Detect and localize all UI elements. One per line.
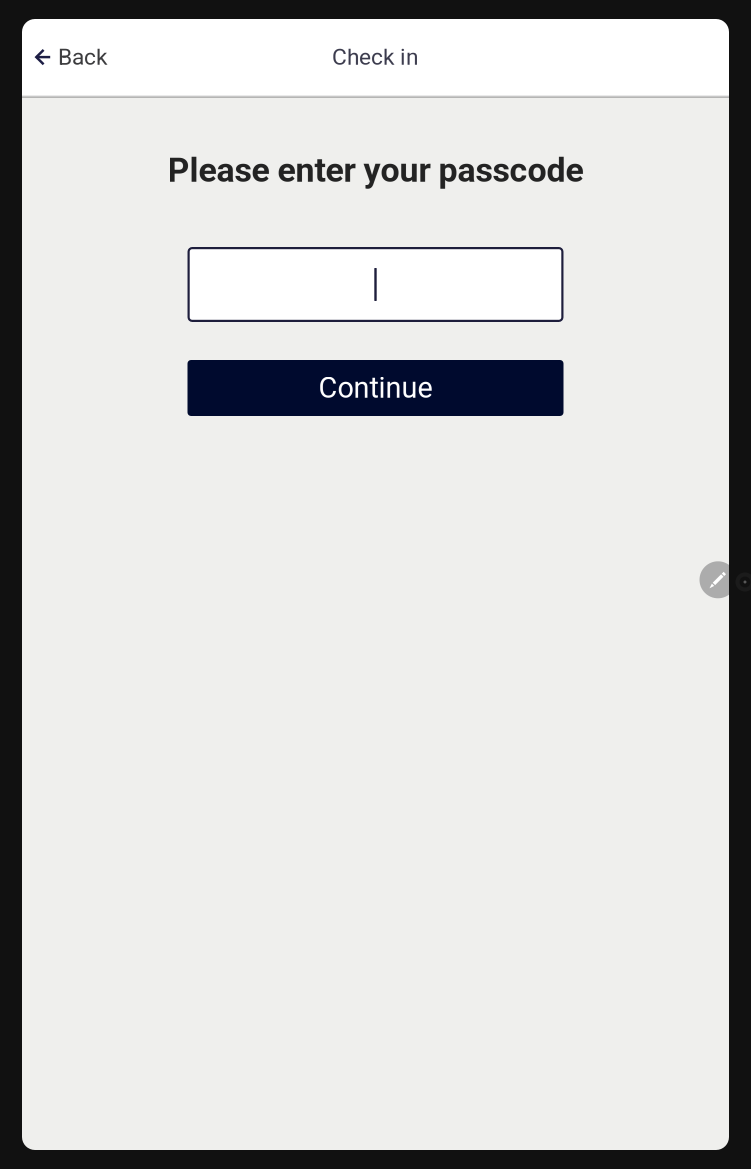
staticText: Continue xyxy=(318,371,432,405)
button[interactable]: Edit xyxy=(699,561,736,598)
staticText: Check in xyxy=(332,44,419,70)
staticText: Back xyxy=(58,44,107,70)
button[interactable]: Back xyxy=(22,30,123,84)
button[interactable]: Passcode xyxy=(187,247,563,322)
button[interactable]: Continue xyxy=(187,360,563,416)
staticText: Please enter your passcode xyxy=(167,150,583,190)
